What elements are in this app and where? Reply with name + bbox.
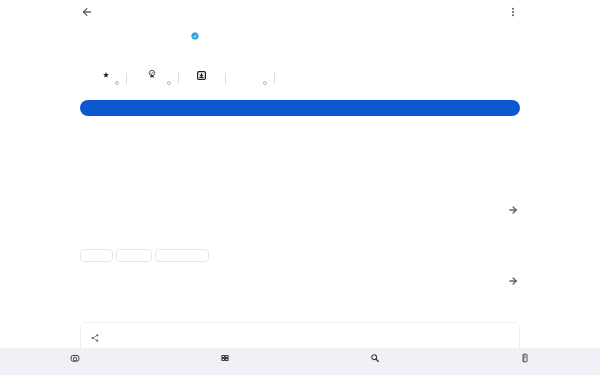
button[interactable]: Games (0, 348, 150, 375)
button[interactable]: See more (505, 202, 521, 218)
button[interactable]: Books (450, 348, 600, 375)
button[interactable]: More options (501, 0, 525, 24)
button[interactable]: Install (80, 100, 520, 116)
button[interactable]: See more (505, 273, 521, 289)
button[interactable]: Back (75, 0, 99, 24)
button[interactable]: Filter (80, 249, 113, 262)
button[interactable]: Filter (155, 249, 209, 262)
button[interactable]: Search (300, 348, 450, 375)
button[interactable]: Filter (116, 249, 152, 262)
button[interactable]: Share (80, 322, 520, 360)
button[interactable]: Apps (150, 348, 300, 375)
